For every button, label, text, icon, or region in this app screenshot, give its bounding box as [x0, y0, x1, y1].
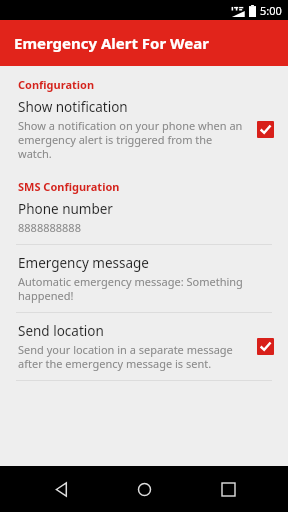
staticText: Emergency Alert For Wear [14, 33, 209, 53]
staticText: Show a notification on your phone when a… [18, 118, 247, 161]
staticText: SMS Configuration [18, 179, 120, 194]
staticText: 5:00 [260, 3, 282, 18]
button[interactable]: Recent apps [205, 466, 251, 512]
button[interactable]: Home [121, 466, 167, 512]
button[interactable]: Toggle setting [257, 338, 274, 355]
staticText: Phone number [18, 200, 113, 218]
button[interactable]: Toggle setting [257, 121, 274, 138]
button[interactable]: Show notification [0, 94, 288, 167]
button[interactable]: Back [38, 466, 84, 512]
button[interactable]: Emergency message [0, 245, 288, 313]
staticText: Emergency message [18, 254, 149, 272]
staticText: Configuration [18, 77, 95, 92]
staticText: Show notification [18, 98, 128, 116]
staticText: Automatic emergency message: Something h… [18, 274, 264, 303]
staticText: Send your location in a separate message… [18, 342, 247, 371]
staticText: Send location [18, 322, 104, 340]
staticText: 8888888888 [18, 220, 81, 235]
button[interactable]: Send location [0, 313, 288, 381]
button[interactable]: Phone number [0, 196, 288, 245]
